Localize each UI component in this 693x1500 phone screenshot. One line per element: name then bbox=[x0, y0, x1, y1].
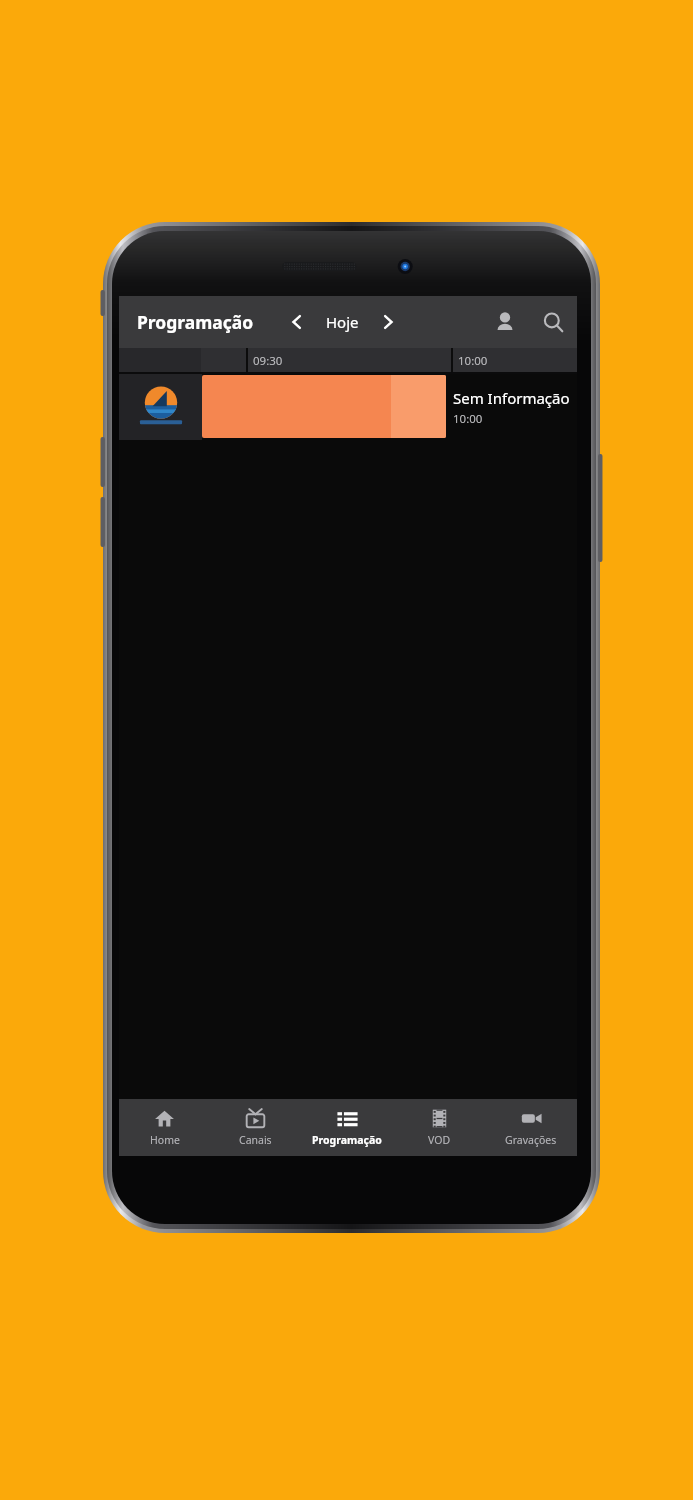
staticText: 09:30 bbox=[253, 353, 283, 369]
staticText: Hoje bbox=[326, 312, 359, 332]
button[interactable]: Próximo dia bbox=[371, 305, 405, 339]
button[interactable]: Programa em exibição bbox=[202, 375, 446, 438]
staticText: Programação bbox=[312, 1133, 382, 1147]
button[interactable]: Gravações bbox=[485, 1099, 577, 1156]
staticText: Home bbox=[150, 1133, 180, 1147]
button[interactable]: Perfil bbox=[483, 300, 527, 344]
button[interactable]: Canais bbox=[210, 1099, 301, 1156]
staticText: Sem Informação bbox=[453, 388, 570, 408]
button[interactable]: Programação bbox=[301, 1099, 393, 1156]
button[interactable]: Hoje bbox=[326, 312, 359, 332]
button[interactable]: TV Ponta Negra bbox=[119, 374, 202, 440]
staticText: 10:00 bbox=[453, 411, 483, 427]
button[interactable]: Sem Informação bbox=[447, 374, 577, 440]
button[interactable]: Dia anterior bbox=[280, 305, 314, 339]
staticText: Gravações bbox=[505, 1133, 557, 1147]
button[interactable]: Programação bbox=[137, 310, 254, 334]
button[interactable]: Home bbox=[119, 1099, 210, 1156]
button[interactable]: VOD bbox=[393, 1099, 485, 1156]
staticText: Canais bbox=[239, 1133, 272, 1147]
button[interactable]: Pesquisar bbox=[531, 300, 575, 344]
staticText: VOD bbox=[428, 1133, 451, 1147]
staticText: 10:00 bbox=[458, 353, 488, 369]
